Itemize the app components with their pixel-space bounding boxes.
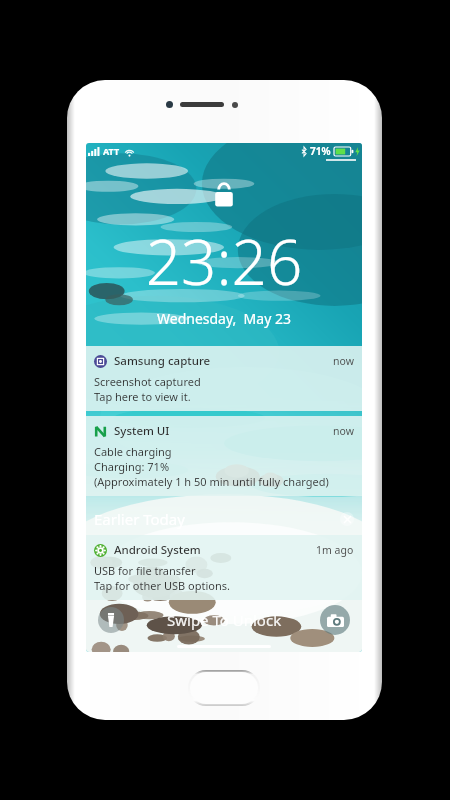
staticText: Swipe To Unlock [167, 610, 282, 630]
staticText: 1m ago [316, 543, 354, 557]
staticText: 71% [310, 144, 331, 158]
staticText: Wednesday, May 23 [157, 309, 291, 328]
staticText: ATT [103, 145, 120, 157]
button[interactable]: Samsung capture [86, 346, 362, 411]
staticText: Android System [114, 542, 201, 558]
staticText: now [333, 354, 354, 368]
staticText: now [333, 424, 354, 438]
button[interactable]: Home [190, 672, 258, 704]
button[interactable]: Android System [86, 535, 362, 600]
staticText: USB for file transfer [94, 563, 196, 578]
button[interactable]: Camera [320, 605, 350, 635]
button[interactable]: System UI [86, 416, 362, 496]
staticText: Cable charging [94, 444, 172, 459]
button[interactable]: Clear notifications [340, 512, 354, 526]
button[interactable]: Flashlight [98, 607, 124, 633]
staticText: Tap here to view it. [94, 389, 191, 404]
staticText: Samsung capture [114, 353, 211, 369]
staticText: Screenshot captured [94, 374, 201, 389]
staticText: (Approximately 1 h 50 min until fully ch… [94, 474, 329, 489]
staticText: 23:26 [86, 219, 362, 303]
staticText: Charging: 71% [94, 459, 170, 474]
staticText: Tap for other USB options. [94, 578, 230, 593]
staticText: Earlier Today [94, 509, 185, 529]
staticText: System UI [114, 423, 170, 439]
